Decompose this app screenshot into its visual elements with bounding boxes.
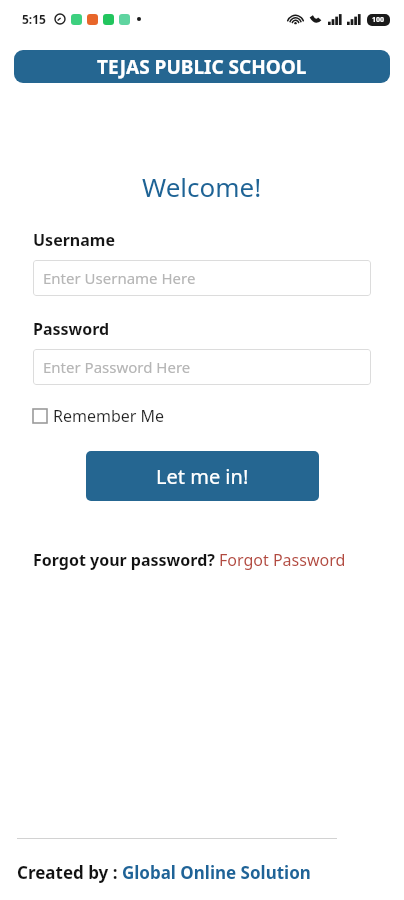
- button[interactable]: Created by : Global Online Solution: [17, 861, 311, 884]
- staticText: Welcome!: [142, 169, 262, 204]
- staticText: 100: [372, 15, 385, 25]
- staticText: Enter Password Here: [43, 357, 191, 377]
- button[interactable]: Let me in!: [86, 451, 319, 501]
- staticText: Remember Me: [53, 405, 165, 427]
- button[interactable]: Remember Me: [33, 403, 165, 429]
- staticText: TEJAS PUBLIC SCHOOL: [97, 54, 307, 80]
- staticText: Forgot your password? Forgot Password: [33, 549, 346, 571]
- staticText: Username: [33, 229, 115, 251]
- staticText: Enter Username Here: [43, 268, 196, 288]
- button[interactable]: TEJAS PUBLIC SCHOOL: [14, 50, 390, 83]
- button[interactable]: Enter Password Here: [33, 349, 371, 385]
- button[interactable]: Enter Username Here: [33, 260, 371, 296]
- staticText: Password: [33, 318, 110, 340]
- button[interactable]: Forgot your password? Forgot Password: [33, 549, 371, 571]
- staticText: Let me in!: [156, 463, 249, 490]
- staticText: 5:15: [22, 11, 46, 27]
